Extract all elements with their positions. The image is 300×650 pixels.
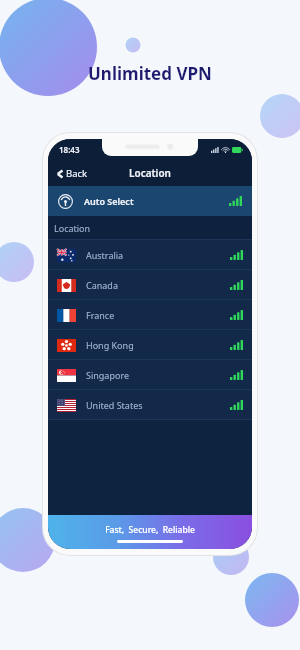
staticText: Back <box>66 167 88 180</box>
staticText: Fast, Secure, Reliable <box>105 524 195 536</box>
button[interactable]: Canada <box>48 270 252 300</box>
staticText: France <box>86 309 115 321</box>
staticText: United States <box>86 399 143 411</box>
button[interactable]: Back <box>54 164 91 183</box>
button[interactable]: United States <box>48 390 252 420</box>
button[interactable]: Australia <box>48 240 252 270</box>
staticText: Location <box>129 166 171 180</box>
staticText: Auto Select <box>84 195 134 207</box>
button[interactable]: France <box>48 300 252 330</box>
staticText: Hong Kong <box>86 339 134 351</box>
button[interactable]: Hong Kong <box>48 330 252 360</box>
staticText: Unlimited VPN <box>88 62 212 85</box>
staticText: Australia <box>86 249 124 261</box>
button[interactable]: Singapore <box>48 360 252 390</box>
staticText: Singapore <box>86 369 130 381</box>
button[interactable]: Auto Select <box>48 186 252 216</box>
staticText: Location <box>54 222 91 234</box>
staticText: 18:43 <box>59 144 80 155</box>
staticText: Canada <box>86 279 118 291</box>
